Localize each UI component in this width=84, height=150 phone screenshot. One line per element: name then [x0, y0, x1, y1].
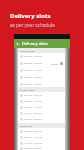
- staticText: as per your schedule: [10, 22, 55, 28]
- button[interactable]: 11:00 AM - 01:00 PM: [18, 104, 65, 110]
- staticText: 07 Jan, Wed: [20, 88, 34, 91]
- button[interactable]: 07:00 AM - 09:00 AM: [18, 53, 65, 60]
- staticText: 01:00 PM - 03:00 PM: [24, 76, 42, 79]
- button[interactable]: 03:00 PM - 05:00 PM: [18, 116, 65, 123]
- staticText: Today, 06 Jan: [20, 49, 35, 52]
- staticText: 09:00 AM - 11:00 AM: [24, 100, 43, 103]
- other: Back: [16, 42, 20, 46]
- button[interactable]: 11:00 AM - 01:00 PM: [18, 140, 65, 146]
- staticText: 09:00 AM - 11:00 AM: [24, 136, 43, 139]
- staticText: 03:00 PM - 05:00 PM: [24, 118, 42, 121]
- staticText: 09:00 AM - 11:00 AM: [24, 62, 43, 65]
- button[interactable]: 09:00 AM - 11:00 AM: [18, 60, 65, 67]
- button[interactable]: 09:00 AM - 11:00 AM: [18, 98, 65, 104]
- staticText: 01:00 PM - 03:00 PM: [24, 147, 42, 150]
- staticText: 03:00 PM - 05:00 PM: [24, 83, 42, 86]
- button[interactable]: 01:00 PM - 03:00 PM: [18, 146, 65, 150]
- button[interactable]: 01:00 PM - 03:00 PM: [18, 74, 65, 81]
- staticText: 11:00 AM - 01:00 PM: [24, 142, 43, 145]
- button[interactable]: 01:00 PM - 03:00 PM: [18, 110, 65, 116]
- staticText: Selected: [51, 63, 59, 65]
- staticText: 11:00 AM - 01:00 PM: [24, 106, 43, 109]
- staticText: 01:00 PM - 03:00 PM: [24, 112, 42, 115]
- staticText: 07:00 AM - 09:00 AM: [24, 130, 43, 133]
- button[interactable]: 11:00 AM - 01:00 PM: [18, 67, 65, 74]
- button[interactable]: 07:00 AM - 09:00 AM: [18, 92, 65, 98]
- staticText: Delivery slots: [22, 41, 48, 46]
- button[interactable]: 03:00 PM - 05:00 PM: [18, 81, 65, 87]
- staticText: 07:00 AM - 09:00 AM: [24, 55, 43, 58]
- button[interactable]: 09:00 AM - 11:00 AM: [18, 134, 65, 140]
- staticText: Delivery slots: [10, 12, 51, 20]
- staticText: 07:00 AM - 09:00 AM: [24, 94, 43, 97]
- button[interactable]: 07:00 AM - 09:00 AM: [18, 128, 65, 134]
- staticText: 08 Jan, Thu: [20, 124, 33, 127]
- staticText: 11:00 AM - 01:00 PM: [24, 69, 43, 72]
